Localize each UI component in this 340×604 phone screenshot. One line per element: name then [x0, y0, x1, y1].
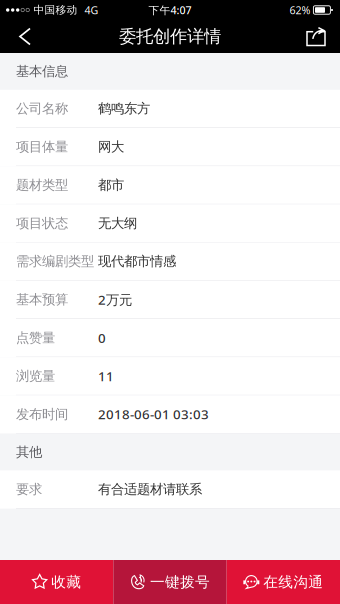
staticText: 现代都市情感	[98, 253, 176, 270]
staticText: 11	[98, 367, 114, 385]
staticText: 62%	[289, 3, 310, 17]
button[interactable]: Share	[296, 20, 336, 53]
button[interactable]: 一键拨号	[113, 560, 227, 604]
staticText: 项目体量	[16, 139, 68, 155]
staticText: 有合适题材请联系	[98, 481, 202, 497]
button[interactable]: Back	[4, 20, 44, 53]
staticText: 一键拨号	[150, 573, 210, 591]
staticText: 发布时间	[16, 406, 68, 422]
staticText: 基本预算	[16, 291, 68, 308]
button[interactable]: 在线沟通	[227, 560, 340, 604]
staticText: 0	[98, 329, 106, 347]
staticText: 委托创作详情	[119, 26, 221, 47]
staticText: 需求编剧类型	[16, 253, 94, 270]
staticText: 鹤鸣东方	[98, 100, 150, 117]
staticText: 中国移动	[33, 3, 77, 16]
staticText: 点赞量	[16, 330, 55, 346]
staticText: 要求	[16, 481, 42, 497]
staticText: 下午4:07	[148, 3, 191, 17]
staticText: 4G	[84, 3, 98, 17]
staticText: 2018-06-01 03:03	[98, 405, 209, 423]
staticText: 基本信息	[16, 63, 68, 80]
staticText: 收藏	[51, 573, 81, 591]
staticText: 都市	[98, 177, 124, 193]
staticText: 浏览量	[16, 368, 55, 384]
staticText: 公司名称	[16, 100, 68, 117]
staticText: 无大纲	[98, 215, 137, 231]
staticText: 网大	[98, 139, 124, 155]
staticText: 题材类型	[16, 177, 68, 193]
staticText: 其他	[16, 444, 42, 460]
staticText: 在线沟通	[263, 573, 323, 591]
staticText: 项目状态	[16, 215, 68, 231]
button[interactable]: 收藏	[0, 560, 113, 604]
staticText: 2万元	[98, 291, 132, 308]
